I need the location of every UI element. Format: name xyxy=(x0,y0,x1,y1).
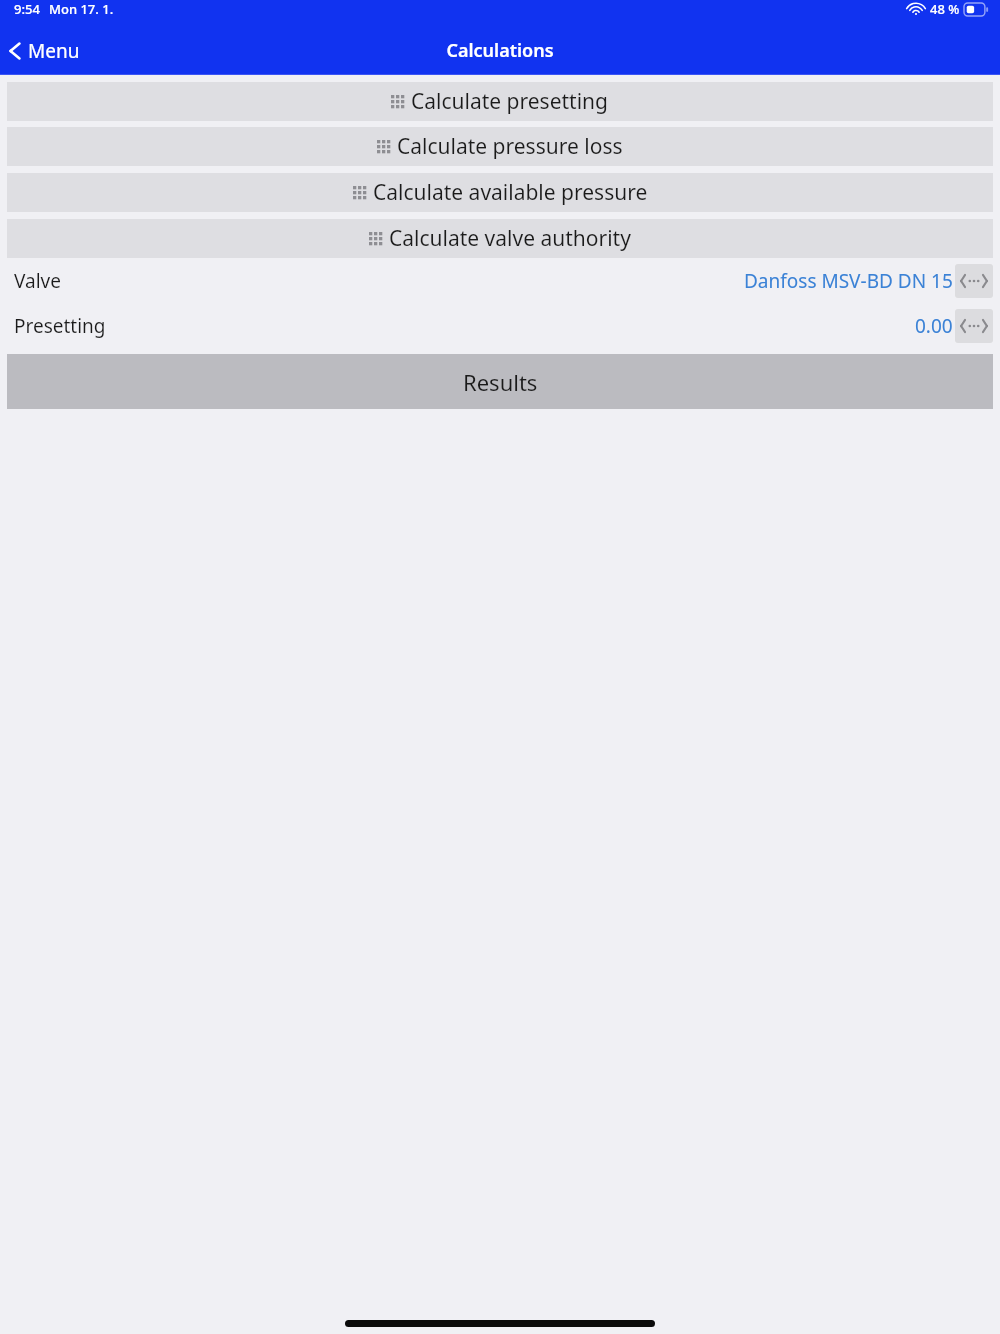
button[interactable]: Calculate valve authority xyxy=(7,219,993,258)
staticText: Presetting xyxy=(14,313,106,339)
button[interactable]: Results xyxy=(7,354,993,409)
staticText: 48 % xyxy=(930,0,960,18)
staticText: Calculate presetting xyxy=(411,87,609,116)
staticText: Danfoss MSV-BD DN 15 xyxy=(744,268,953,294)
staticText: Calculations xyxy=(446,38,554,63)
button[interactable]: Calculate presetting xyxy=(7,82,993,121)
staticText: Valve xyxy=(14,268,61,294)
staticText: Results xyxy=(463,367,538,397)
button[interactable]: Select Valve xyxy=(955,264,993,298)
staticText: Mon 17. 1. xyxy=(49,0,114,18)
staticText: Menu xyxy=(28,38,80,64)
button[interactable]: Select Presetting xyxy=(955,309,993,343)
staticText: Calculate valve authority xyxy=(389,224,631,253)
staticText: Calculate pressure loss xyxy=(397,132,623,161)
button[interactable]: Valve xyxy=(0,258,1000,303)
staticText: Calculate available pressure xyxy=(373,178,648,207)
button[interactable]: Presetting xyxy=(0,303,1000,348)
button[interactable]: Calculate pressure loss xyxy=(7,127,993,166)
staticText: 9:54 xyxy=(14,0,40,18)
button[interactable]: Calculate available pressure xyxy=(7,173,993,212)
button[interactable]: Menu xyxy=(0,32,90,70)
staticText: 0.00 xyxy=(915,313,953,339)
